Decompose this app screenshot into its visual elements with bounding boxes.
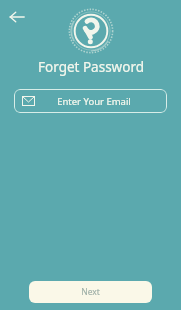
button[interactable]: Back: [4, 4, 30, 30]
staticText: Forget Password: [38, 58, 144, 76]
staticText: Enter Your Email: [57, 95, 131, 108]
staticText: Next: [81, 286, 100, 298]
button[interactable]: Next: [29, 281, 152, 303]
button[interactable]: Enter Your Email: [14, 89, 167, 113]
